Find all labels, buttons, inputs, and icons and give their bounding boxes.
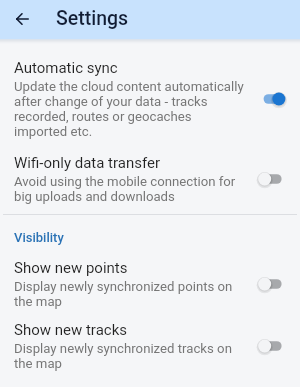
staticText: Automatic sync	[14, 59, 118, 77]
button[interactable]: Show new tracks	[0, 321, 300, 371]
button[interactable]: Show new points	[0, 259, 300, 309]
button[interactable]: Toggle on	[262, 88, 286, 110]
staticText: Wifi-only data transfer	[14, 154, 161, 172]
staticText: Avoid using the mobile connection for bi…	[14, 174, 247, 204]
button[interactable]: Back	[9, 6, 35, 32]
button[interactable]: Automatic sync	[0, 59, 300, 139]
button[interactable]: Toggle off	[262, 335, 286, 357]
staticText: Display newly synchronized tracks on the…	[14, 341, 247, 371]
staticText: Display newly synchronized points on the…	[14, 279, 247, 309]
button[interactable]: Toggle off	[262, 273, 286, 295]
button[interactable]: Wifi-only data transfer	[0, 154, 300, 204]
staticText: Show new points	[14, 259, 128, 277]
staticText: Show new tracks	[14, 321, 127, 339]
staticText: Settings	[56, 7, 129, 30]
staticText: Update the cloud content automatically a…	[14, 79, 247, 139]
button[interactable]: Toggle off	[262, 168, 286, 190]
staticText: Visibility	[14, 230, 64, 245]
